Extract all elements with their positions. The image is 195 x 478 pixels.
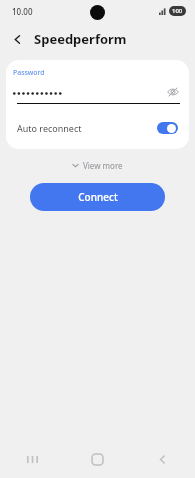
staticText: Auto reconnect [17,122,157,134]
button[interactable]: Back [130,440,195,478]
button[interactable]: Back [0,22,34,56]
button[interactable]: Show password [164,83,182,101]
button[interactable]: Recents [0,440,65,478]
button[interactable]: Password [6,60,189,104]
button[interactable]: Home [65,440,130,478]
button[interactable]: Connect [30,183,165,211]
staticText: Speedperform [34,30,127,48]
staticText: 100 [172,7,183,15]
staticText: Password [13,68,45,78]
staticText: View more [83,160,123,171]
staticText: Connect [78,190,118,204]
button[interactable]: Auto reconnect [6,113,189,143]
button[interactable]: View more [66,158,129,173]
staticText: 10.00 [12,6,33,17]
button[interactable]: Auto reconnect toggle [157,122,178,134]
